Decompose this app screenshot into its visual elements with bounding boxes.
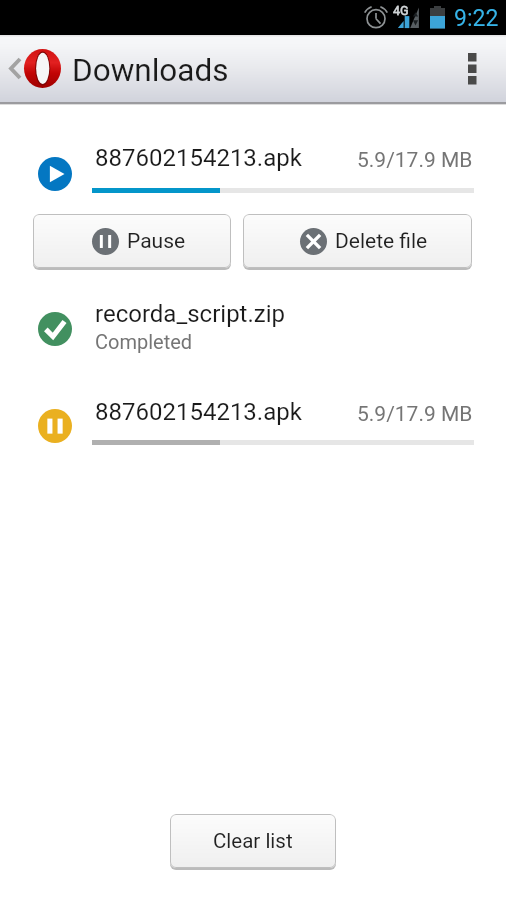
staticText: Delete file [335, 229, 428, 254]
staticText: Pause [127, 229, 186, 254]
staticText: 9:22 [454, 5, 499, 32]
staticText: 887602154213.apk [95, 398, 302, 426]
staticText: Downloads [72, 52, 229, 89]
button[interactable]: Completed [0, 296, 506, 362]
button[interactable]: Back [0, 35, 61, 101]
staticText: 4G [393, 3, 409, 18]
staticText: recorda_script.zip [95, 300, 286, 328]
staticText: 5.9/17.9 MB [357, 148, 473, 173]
other: Completed [38, 312, 72, 346]
button[interactable]: Resume download [0, 141, 506, 207]
staticText: Completed [95, 330, 193, 353]
other: Back [10, 58, 21, 79]
staticText: 5.9/17.9 MB [357, 402, 473, 427]
button[interactable]: Paused [0, 393, 506, 459]
other: Paused [38, 409, 72, 443]
other: Resume download [38, 157, 72, 191]
button[interactable]: Delete file [243, 214, 472, 268]
button[interactable]: More options [446, 35, 498, 102]
staticText: 887602154213.apk [95, 144, 302, 172]
button[interactable]: Pause [33, 214, 231, 268]
button[interactable]: Clear list [170, 814, 336, 868]
staticText: Clear list [213, 829, 293, 853]
